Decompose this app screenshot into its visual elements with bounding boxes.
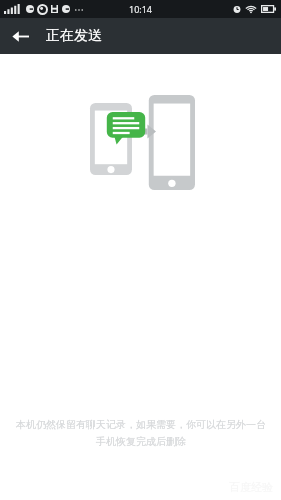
staticText: 本机仍然保留有聊天记录，如果需要，你可以在另外一台 <box>16 418 266 431</box>
staticText: 手机恢复完成后删除 <box>96 435 186 448</box>
button[interactable]: Back <box>0 18 40 54</box>
staticText: 百度经验 <box>229 480 273 494</box>
staticText: 10:14 <box>129 3 153 15</box>
staticText: 正在发送 <box>46 27 102 45</box>
